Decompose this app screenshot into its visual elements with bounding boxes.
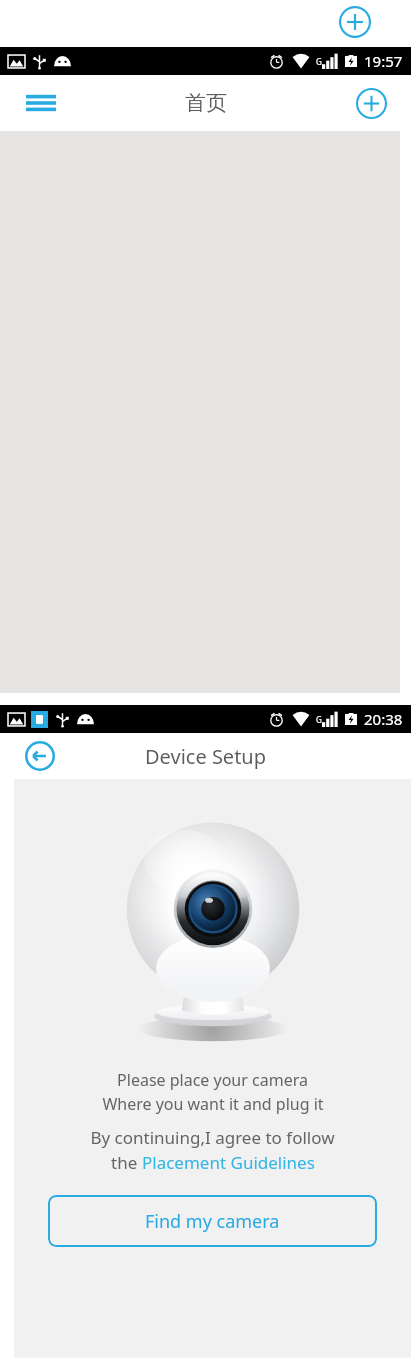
staticText: Where you want it and plug it bbox=[102, 1093, 324, 1115]
staticText: Device Setup bbox=[145, 743, 267, 770]
button[interactable]: Add device bbox=[351, 83, 391, 123]
button[interactable]: Find my camera bbox=[48, 1195, 377, 1247]
staticText: G bbox=[316, 714, 322, 725]
staticText: 19:57 bbox=[364, 51, 403, 71]
button[interactable]: Menu bbox=[20, 82, 62, 124]
staticText: Please place your camera bbox=[117, 1069, 308, 1091]
staticText: 首页 bbox=[185, 90, 227, 116]
staticText: the bbox=[111, 1151, 142, 1174]
staticText: Placement Guidelines bbox=[142, 1151, 315, 1174]
staticText: Find my camera bbox=[145, 1209, 280, 1234]
button[interactable]: Placement Guidelines bbox=[142, 1151, 315, 1174]
button[interactable]: Back bbox=[20, 736, 60, 776]
button[interactable]: Add device bbox=[338, 5, 372, 39]
staticText: G bbox=[316, 56, 322, 67]
staticText: By continuing,I agree to follow bbox=[90, 1126, 335, 1149]
staticText: 20:38 bbox=[364, 709, 403, 729]
